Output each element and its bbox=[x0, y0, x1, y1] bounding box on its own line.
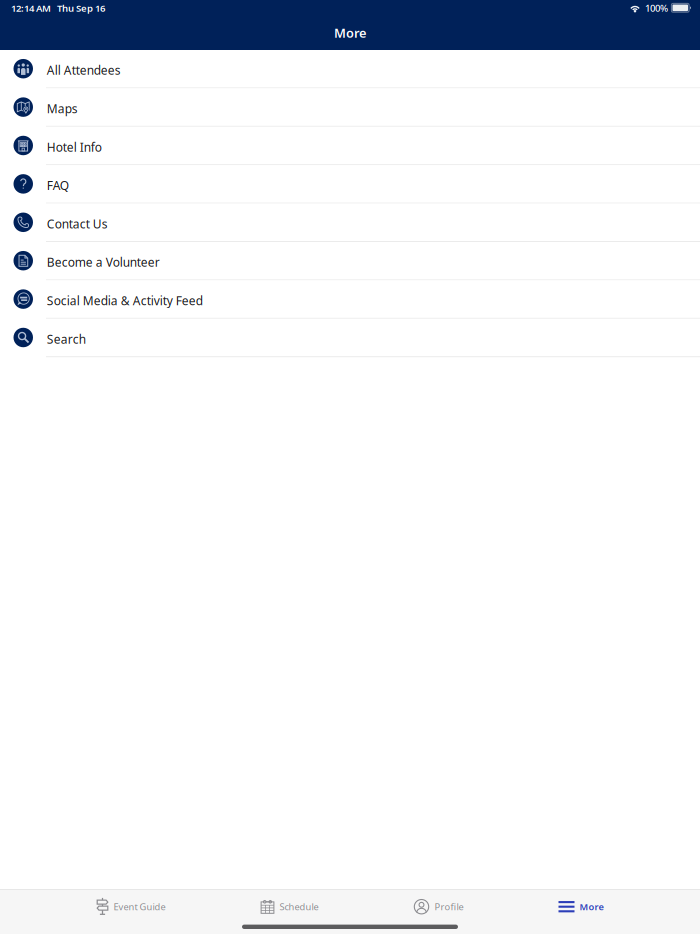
staticText: Social Media & Activity Feed bbox=[47, 292, 203, 309]
button[interactable]: Social Media & Activity Feed bbox=[0, 280, 700, 319]
staticText: Hotel Info bbox=[47, 139, 102, 155]
staticText: All Attendees bbox=[47, 62, 121, 78]
staticText: Become a Volunteer bbox=[47, 254, 160, 270]
button[interactable]: All Attendees bbox=[0, 50, 700, 88]
button[interactable]: Maps bbox=[0, 88, 700, 127]
button[interactable]: More bbox=[558, 894, 603, 920]
staticText: 100% bbox=[645, 1, 668, 15]
button[interactable]: Hotel Info bbox=[0, 127, 700, 165]
staticText: Contact Us bbox=[47, 216, 108, 232]
staticText: Profile bbox=[434, 900, 463, 913]
staticText: More bbox=[334, 24, 366, 41]
button[interactable]: Contact Us bbox=[0, 204, 700, 242]
staticText: 12:14 AM bbox=[11, 1, 51, 15]
button[interactable]: Become a Volunteer bbox=[0, 242, 700, 280]
staticText: Search bbox=[47, 331, 86, 347]
button[interactable]: Search bbox=[0, 319, 700, 357]
staticText: More bbox=[579, 900, 603, 913]
button[interactable]: Event Guide bbox=[96, 894, 165, 920]
button[interactable]: Profile bbox=[413, 894, 463, 920]
staticText: Event Guide bbox=[113, 900, 165, 913]
staticText: Maps bbox=[47, 100, 78, 117]
staticText: Thu Sep 16 bbox=[57, 1, 105, 15]
button[interactable]: Schedule bbox=[260, 894, 318, 920]
staticText: Schedule bbox=[279, 900, 318, 913]
button[interactable]: FAQ bbox=[0, 165, 700, 204]
staticText: FAQ bbox=[47, 177, 69, 193]
